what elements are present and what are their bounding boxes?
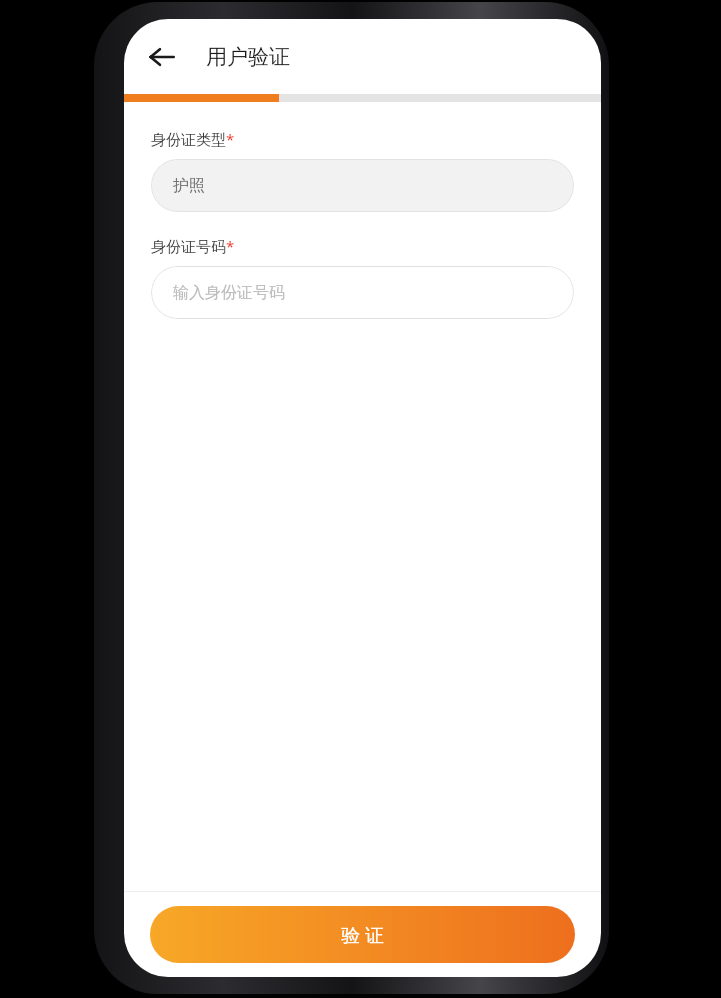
button[interactable]: 验 证 <box>150 906 575 963</box>
staticText: 验 证 <box>341 922 384 948</box>
staticText: 护照 <box>173 176 205 196</box>
staticText: 身份证类型* <box>151 129 235 149</box>
button[interactable]: 输入身份证号码 <box>151 266 574 319</box>
staticText: 输入身份证号码 <box>173 283 285 303</box>
button[interactable]: 护照 <box>151 159 574 212</box>
staticText: 身份证号码* <box>151 236 235 256</box>
staticText: 用户验证 <box>206 44 290 70</box>
button[interactable]: Back <box>136 31 188 83</box>
